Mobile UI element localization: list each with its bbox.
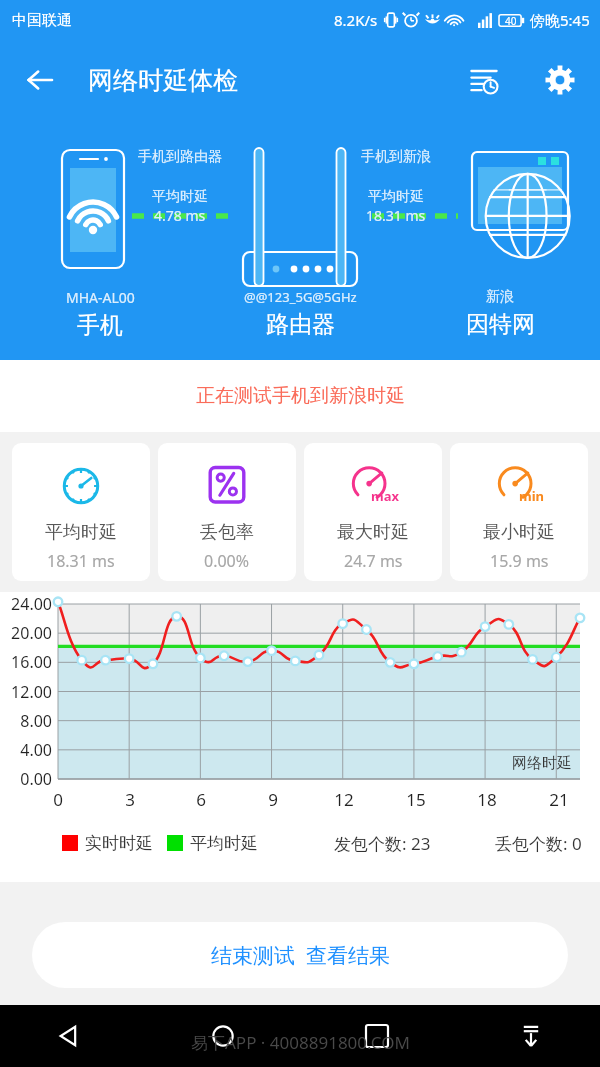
button[interactable]: Recents [354,1013,400,1059]
button[interactable]: 丢包率 [158,443,296,581]
staticText: 正在测试手机到新浪时延 [196,384,405,408]
staticText: 最大时延 [337,521,409,544]
staticText: @@123_5G@5GHz [244,288,357,306]
staticText: 新浪 [486,288,514,306]
staticText: 9 [261,788,285,811]
staticText: 平均时延 [368,188,424,206]
staticText: 16.00 [0,651,52,673]
staticText: 易下APP · 4008891800.COM [191,1031,410,1054]
staticText: 网络时延 [512,754,572,773]
staticText: 丢包个数: 0 [495,832,582,855]
staticText: max [371,487,399,505]
staticText: 0.00 [0,768,52,790]
staticText: 中国联通 [12,11,72,30]
staticText: 40 [505,14,517,28]
button[interactable]: Back [14,54,66,106]
staticText: 平均时延 [190,833,258,854]
staticText: 手机到路由器 [138,148,222,166]
staticText: 路由器 [266,310,335,339]
staticText: 18.31 ms [366,206,426,225]
staticText: 15 [404,788,428,811]
staticText: 20.00 [0,622,52,644]
staticText: 0.00% [204,550,250,572]
staticText: 因特网 [466,310,535,339]
staticText: 最小时延 [483,521,555,544]
button[interactable]: Hide navigation bar [508,1013,554,1059]
staticText: 4.00 [0,739,52,761]
staticText: 实时时延 [85,833,153,854]
staticText: 0 [46,788,70,811]
staticText: 平均时延 [152,188,208,206]
staticText: 平均时延 [45,521,117,544]
staticText: 3 [118,788,142,811]
staticText: 手机到新浪 [361,148,431,166]
staticText: 丢包率 [200,521,254,544]
staticText: 4.78 ms [154,206,206,225]
staticText: 8.2K/s [334,10,378,30]
staticText: 21 [547,788,571,811]
staticText: min [519,487,545,505]
staticText: 18 [475,788,499,811]
staticText: MHA-AL00 [66,288,135,307]
button[interactable]: min [450,443,588,581]
staticText: 手机 [77,311,123,340]
staticText: 8.00 [0,710,52,732]
staticText: 24.7 ms [344,550,403,572]
staticText: 15.9 ms [490,550,549,572]
staticText: 12.00 [0,681,52,703]
button[interactable]: Home [200,1013,246,1059]
staticText: 12 [332,788,356,811]
staticText: 结束测试 查看结果 [211,941,390,970]
staticText: 24.00 [0,593,52,615]
staticText: 发包个数: 23 [334,832,431,855]
staticText: 6 [189,788,213,811]
staticText: 18.31 ms [47,550,115,572]
button[interactable]: 结束测试 查看结果 [32,922,568,988]
button[interactable]: Back [46,1013,92,1059]
staticText: 傍晚5:45 [530,10,590,30]
button[interactable]: max [304,443,442,581]
staticText: 网络时延体检 [88,65,238,96]
button[interactable]: Settings [534,54,586,106]
button[interactable]: 平均时延 [12,443,150,581]
button[interactable]: History [458,54,510,106]
